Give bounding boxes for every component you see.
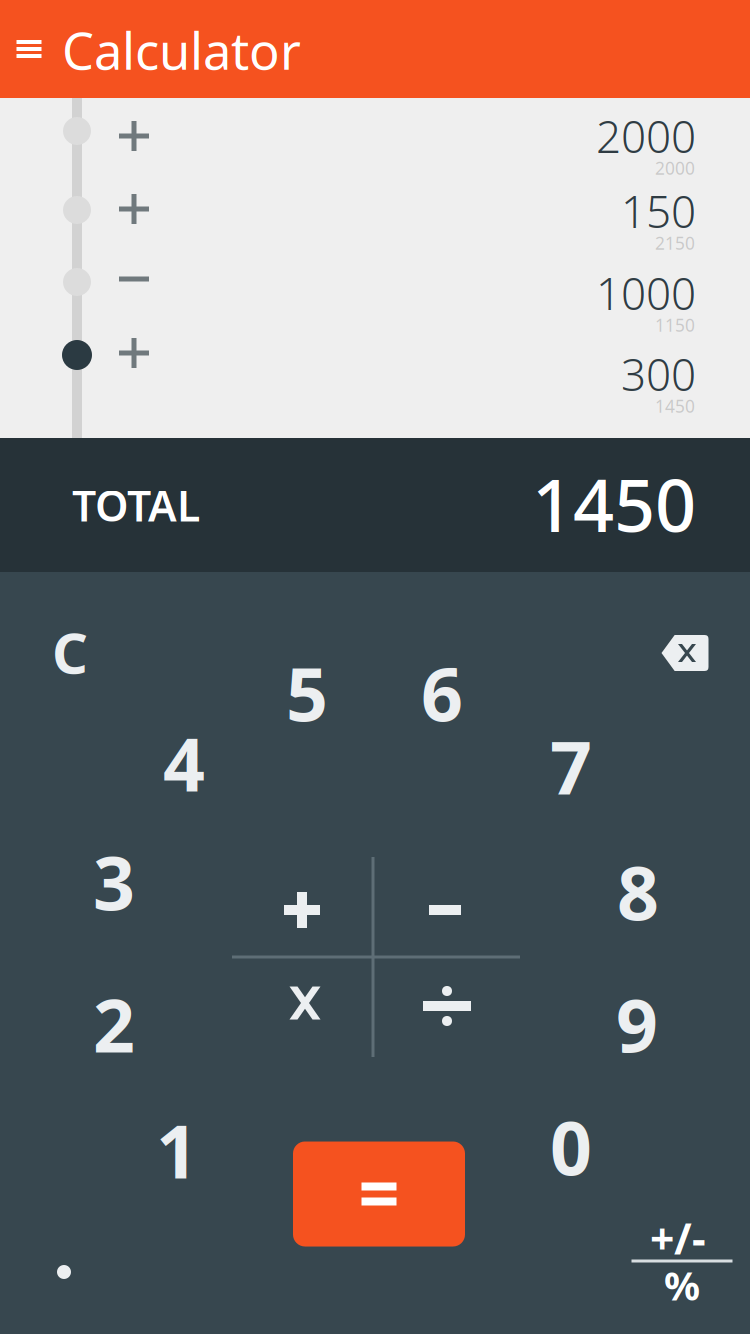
staticText: 3 — [93, 833, 135, 931]
staticText: 4 — [163, 714, 205, 812]
button[interactable]: Plus — [254, 862, 350, 958]
button[interactable]: Menu — [0, 18, 60, 80]
staticText: 2000 — [655, 156, 695, 179]
button[interactable]: 9 — [589, 976, 685, 1072]
staticText: TOTAL — [72, 477, 200, 533]
staticText: % — [664, 1258, 700, 1311]
staticText: Calculator — [62, 16, 301, 84]
staticText: 2150 — [655, 231, 695, 254]
staticText: 1 — [156, 1101, 198, 1199]
button[interactable]: 300 — [0, 343, 750, 415]
button[interactable]: Equals — [293, 1141, 465, 1246]
button[interactable]: % — [627, 1263, 737, 1307]
staticText: 1450 — [655, 394, 695, 417]
staticText: 7 — [550, 717, 592, 815]
staticText: 300 — [621, 345, 696, 403]
staticText: 9 — [616, 975, 658, 1073]
button[interactable]: Multiply — [257, 955, 353, 1051]
button[interactable]: 150 — [0, 180, 750, 252]
button[interactable]: 3 — [66, 834, 162, 930]
staticText: C — [52, 615, 88, 689]
button[interactable]: +/- — [623, 1216, 733, 1260]
button[interactable]: 1000 — [0, 262, 750, 334]
staticText: 5 — [286, 644, 328, 742]
button[interactable]: 7 — [523, 718, 619, 814]
button[interactable]: Decimal point — [34, 1242, 94, 1302]
staticText: 1450 — [532, 456, 696, 552]
button[interactable]: 6 — [394, 645, 490, 741]
button[interactable]: 2000 — [0, 105, 750, 177]
button[interactable]: 1 — [129, 1102, 225, 1198]
button[interactable]: 0 — [523, 1099, 619, 1195]
staticText: 0 — [550, 1098, 592, 1196]
button[interactable]: Minus — [397, 862, 493, 958]
button[interactable]: Backspace — [649, 625, 719, 681]
staticText: 150 — [621, 182, 696, 240]
staticText: 2000 — [596, 107, 696, 165]
staticText: 8 — [617, 843, 659, 941]
button[interactable]: 5 — [259, 645, 355, 741]
staticText: +/- — [650, 1210, 706, 1266]
staticText: 1150 — [655, 313, 695, 336]
staticText: 6 — [421, 644, 463, 742]
button[interactable]: 2 — [66, 976, 162, 1072]
button[interactable]: 8 — [590, 844, 686, 940]
staticText: 2 — [93, 975, 135, 1073]
staticText: 1000 — [596, 264, 696, 322]
button[interactable]: 4 — [136, 715, 232, 811]
button[interactable]: C — [22, 604, 118, 700]
button[interactable]: Divide — [399, 958, 495, 1054]
